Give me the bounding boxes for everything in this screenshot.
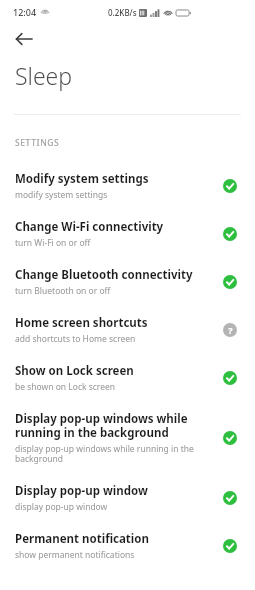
staticText: Change Wi-Fi connectivity [15, 219, 164, 235]
staticText: Sleep [15, 60, 73, 91]
staticText: Change Bluetooth connectivity [15, 267, 193, 283]
button[interactable]: Allowed [219, 427, 241, 449]
staticText: modify system settings [15, 189, 108, 201]
staticText: SETTINGS [15, 137, 60, 149]
staticText: 12:04 [13, 6, 37, 18]
button[interactable]: Allowed [219, 271, 241, 293]
button[interactable]: Show on Lock screen [0, 354, 255, 402]
button[interactable]: Allowed [219, 367, 241, 389]
button[interactable]: Change Wi-Fi connectivity [0, 210, 255, 258]
button[interactable]: Allowed [219, 175, 241, 197]
staticText: show permanent notifications [15, 549, 135, 561]
staticText: Display pop-up windows while running in … [15, 411, 209, 441]
staticText: turn Wi-Fi on or off [15, 237, 91, 249]
button[interactable]: Allowed [219, 487, 241, 509]
staticText: turn Bluetooth on or off [15, 285, 111, 297]
staticText: Modify system settings [15, 171, 149, 187]
button[interactable]: Change Bluetooth connectivity [0, 258, 255, 306]
staticText: add shortcuts to Home screen [15, 333, 136, 345]
staticText: display pop-up window [15, 501, 108, 513]
button[interactable]: Allowed [219, 223, 241, 245]
staticText: Permanent notification [15, 531, 149, 547]
button[interactable]: Display pop-up window [0, 474, 255, 522]
button[interactable]: Allowed [219, 535, 241, 557]
button[interactable]: Ask [219, 319, 241, 341]
staticText: Show on Lock screen [15, 363, 134, 379]
button[interactable]: Display pop-up windows while running in … [0, 402, 255, 474]
button[interactable]: Permanent notification [0, 522, 255, 570]
staticText: Home screen shortcuts [15, 315, 148, 331]
staticText: be shown on Lock screen [15, 381, 116, 393]
staticText: Display pop-up window [15, 483, 148, 499]
button[interactable]: Home screen shortcuts [0, 306, 255, 354]
staticText: display pop-up windows while running in … [15, 443, 209, 465]
button[interactable]: Modify system settings [0, 162, 255, 210]
button[interactable]: Back [8, 24, 40, 54]
staticText: ? [228, 324, 233, 336]
staticText: 0.2KB/s [108, 7, 137, 18]
